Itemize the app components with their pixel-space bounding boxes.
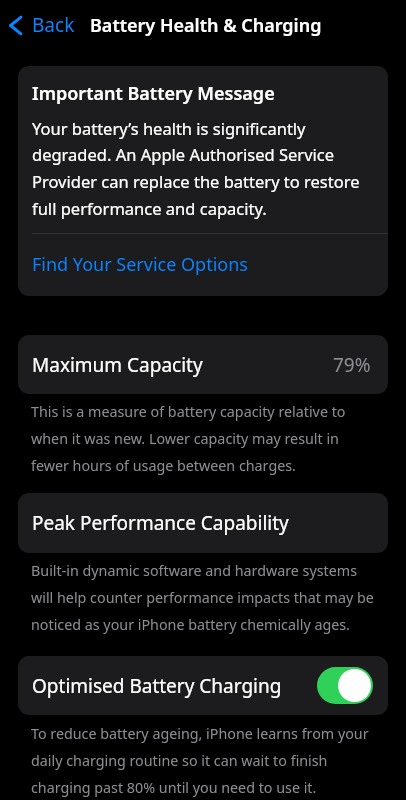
button[interactable]: Optimised Battery Charging toggle: [317, 667, 373, 704]
staticText: This is a measure of battery capacity re…: [31, 402, 376, 475]
button[interactable]: Maximum Capacity: [18, 335, 388, 394]
staticText: Optimised Battery Charging: [32, 673, 282, 699]
staticText: 79%: [333, 352, 371, 378]
staticText: Your battery’s health is significantly d…: [32, 117, 372, 220]
staticText: Find Your Service Options: [32, 252, 248, 277]
staticText: Maximum Capacity: [32, 352, 203, 378]
staticText: Built-in dynamic software and hardware s…: [31, 561, 376, 634]
staticText: Peak Performance Capability: [32, 510, 289, 536]
staticText: To reduce battery ageing, iPhone learns …: [31, 724, 376, 797]
staticText: Important Battery Message: [32, 81, 275, 106]
staticText: Back: [32, 12, 75, 38]
button[interactable]: Back: [5, 6, 81, 44]
button[interactable]: Find Your Service Options: [18, 234, 388, 296]
staticText: Battery Health & Charging: [90, 13, 322, 38]
button[interactable]: Optimised Battery Charging: [18, 656, 388, 715]
button[interactable]: Peak Performance Capability: [18, 493, 388, 553]
